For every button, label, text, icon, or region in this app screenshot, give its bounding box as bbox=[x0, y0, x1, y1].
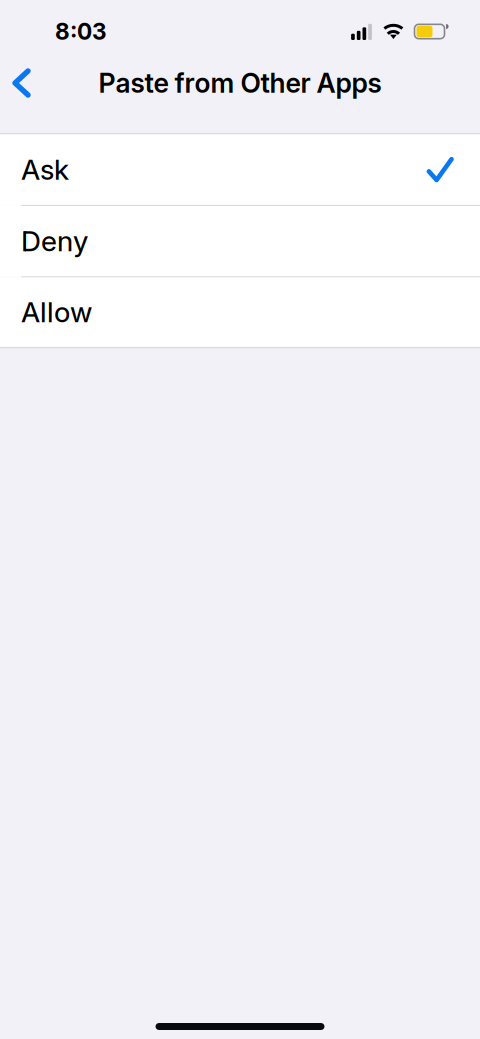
staticText: Deny bbox=[21, 224, 88, 258]
button[interactable]: Deny bbox=[0, 206, 480, 276]
staticText: Allow bbox=[21, 295, 92, 329]
staticText: 8:03 bbox=[55, 18, 107, 45]
button[interactable]: Back bbox=[0, 56, 51, 110]
button[interactable]: Ask bbox=[0, 134, 480, 205]
button[interactable]: Allow bbox=[0, 277, 480, 347]
staticText: Paste from Other Apps bbox=[98, 67, 381, 99]
staticText: Ask bbox=[21, 153, 69, 187]
